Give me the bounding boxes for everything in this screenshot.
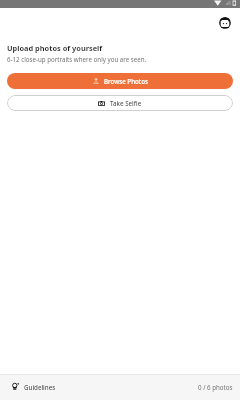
staticText: Take Selfie (110, 99, 142, 107)
staticText: Guidelines (24, 383, 56, 391)
button[interactable]: Profile (216, 14, 234, 32)
button[interactable]: Guidelines (11, 382, 56, 391)
button[interactable]: Browse Photos (7, 73, 233, 89)
staticText: Browse Photos (104, 77, 148, 85)
staticText: 6-12 close-up portraits where only you a… (7, 55, 147, 63)
button[interactable]: Take Selfie (7, 95, 233, 111)
staticText: Upload photos of yourself (7, 43, 103, 53)
staticText: 0 / 6 photos (198, 383, 233, 391)
